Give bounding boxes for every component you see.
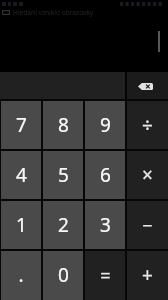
staticText: 8 bbox=[58, 112, 69, 138]
button[interactable]: 7 bbox=[0, 100, 42, 150]
button[interactable]: 5 bbox=[42, 150, 84, 200]
button[interactable]: 8 bbox=[42, 100, 84, 150]
staticText: 6 bbox=[100, 162, 111, 188]
button[interactable]: Delete bbox=[126, 72, 168, 100]
button[interactable]: 0 bbox=[42, 250, 84, 300]
staticText: 4 bbox=[16, 162, 27, 188]
staticText: . bbox=[18, 262, 24, 288]
staticText: − bbox=[142, 213, 153, 238]
staticText: 2 bbox=[58, 212, 69, 238]
staticText: × bbox=[142, 162, 153, 188]
staticText: 3 bbox=[100, 212, 111, 238]
staticText: 5 bbox=[58, 162, 69, 188]
button[interactable]: 9 bbox=[84, 100, 126, 150]
staticText: 7 bbox=[16, 112, 27, 138]
button[interactable]: = bbox=[84, 250, 126, 300]
button[interactable]: − bbox=[126, 200, 168, 250]
staticText: Hledání vzniklo obrazovky bbox=[13, 8, 94, 17]
button[interactable]: . bbox=[0, 250, 42, 300]
staticText: 9 bbox=[100, 112, 111, 138]
staticText: 0 bbox=[58, 262, 69, 288]
button[interactable]: 1 bbox=[0, 200, 42, 250]
button[interactable]: 3 bbox=[84, 200, 126, 250]
staticText: 1 bbox=[16, 212, 27, 238]
staticText: = bbox=[100, 263, 111, 288]
button[interactable]: × bbox=[126, 150, 168, 200]
staticText: ÷ bbox=[142, 112, 153, 138]
button[interactable]: 2 bbox=[42, 200, 84, 250]
button[interactable]: 4 bbox=[0, 150, 42, 200]
button[interactable]: + bbox=[126, 250, 168, 300]
staticText: + bbox=[142, 262, 153, 288]
button[interactable]: ÷ bbox=[126, 100, 168, 150]
button[interactable]: 6 bbox=[84, 150, 126, 200]
